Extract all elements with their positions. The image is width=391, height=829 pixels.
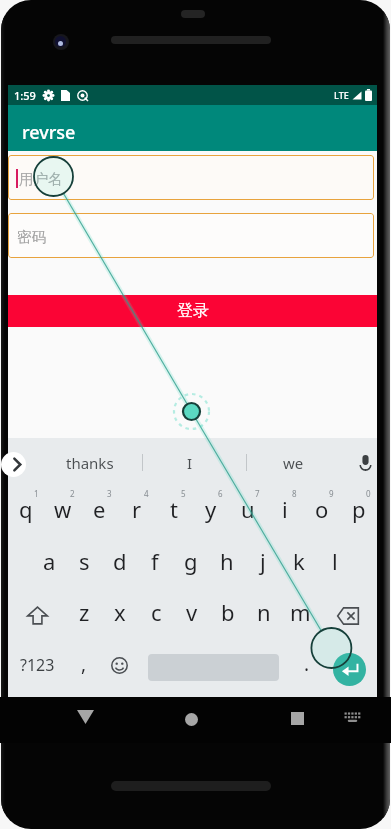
staticText: 2 xyxy=(70,488,75,499)
staticText: ?123 xyxy=(20,654,55,676)
button[interactable]: x xyxy=(102,590,138,641)
button[interactable]: , xyxy=(67,641,100,692)
button[interactable]: z xyxy=(67,590,102,641)
button[interactable]: Emoji xyxy=(100,641,138,692)
button[interactable]: . xyxy=(290,641,323,692)
button[interactable]: 4 xyxy=(118,487,155,539)
staticText: LTE xyxy=(334,89,349,101)
staticText: 4 xyxy=(144,488,149,499)
staticText: I xyxy=(187,453,193,473)
staticText: 0 xyxy=(366,488,371,499)
staticText: 3 xyxy=(107,488,112,499)
staticText: 密码 xyxy=(17,228,46,246)
button[interactable]: Backspace xyxy=(318,590,377,641)
staticText: 6 xyxy=(218,488,223,499)
staticText: 9 xyxy=(329,488,334,499)
staticText: r xyxy=(132,494,142,524)
button[interactable]: 8 xyxy=(266,487,303,539)
button[interactable]: g xyxy=(173,539,209,590)
button[interactable]: Enter xyxy=(323,641,377,692)
button[interactable]: 9 xyxy=(303,487,340,539)
staticText: w xyxy=(54,494,72,524)
button[interactable]: 密码 xyxy=(8,213,374,258)
button[interactable]: m xyxy=(282,590,318,641)
button[interactable]: s xyxy=(67,539,102,590)
staticText: f xyxy=(151,546,159,576)
staticText: 1 xyxy=(34,488,39,499)
staticText: i xyxy=(282,494,288,524)
button[interactable]: 用户名 xyxy=(8,155,374,200)
button[interactable]: a xyxy=(32,539,67,590)
staticText: g xyxy=(184,546,198,576)
button[interactable]: 7 xyxy=(229,487,266,539)
button[interactable]: 3 xyxy=(81,487,118,539)
button[interactable]: k xyxy=(281,539,317,590)
button[interactable]: f xyxy=(137,539,173,590)
button[interactable]: Home xyxy=(168,697,215,743)
staticText: 用户名 xyxy=(19,170,63,188)
staticText: o xyxy=(315,494,329,524)
staticText: c xyxy=(151,597,162,627)
button[interactable]: 登录 xyxy=(8,295,377,327)
staticText: e xyxy=(93,494,106,524)
staticText: 8 xyxy=(292,488,297,499)
staticText: a xyxy=(43,546,56,576)
button[interactable]: c xyxy=(138,590,174,641)
staticText: q xyxy=(19,494,33,524)
button[interactable]: 0 xyxy=(340,487,377,539)
button[interactable]: Space xyxy=(138,641,290,692)
button[interactable]: we xyxy=(247,438,339,487)
staticText: b xyxy=(221,597,235,627)
staticText: s xyxy=(79,546,90,576)
staticText: d xyxy=(113,546,127,576)
button[interactable]: b xyxy=(210,590,246,641)
button[interactable]: d xyxy=(102,539,137,590)
staticText: h xyxy=(220,546,234,576)
staticText: l xyxy=(332,546,338,576)
button[interactable]: Back xyxy=(62,697,109,743)
button[interactable]: 2 xyxy=(44,487,81,539)
staticText: we xyxy=(283,453,304,473)
staticText: v xyxy=(186,597,198,627)
staticText: j xyxy=(260,546,266,576)
staticText: y xyxy=(205,494,217,524)
button[interactable]: h xyxy=(209,539,245,590)
staticText: 登录 xyxy=(177,301,209,321)
staticText: x xyxy=(114,597,126,627)
staticText: p xyxy=(352,494,366,524)
button[interactable]: 6 xyxy=(192,487,229,539)
button[interactable]: Voice input xyxy=(351,438,380,487)
staticText: u xyxy=(241,494,255,524)
staticText: z xyxy=(79,597,90,627)
button[interactable]: n xyxy=(246,590,282,641)
staticText: thanks xyxy=(66,453,114,473)
button[interactable]: ?123 xyxy=(8,641,67,692)
button[interactable]: Switch keyboard xyxy=(336,697,369,743)
staticText: . xyxy=(304,651,310,677)
button[interactable]: v xyxy=(174,590,210,641)
staticText: 7 xyxy=(255,488,260,499)
button[interactable]: 1 xyxy=(8,487,44,539)
staticText: t xyxy=(170,494,178,524)
button[interactable]: l xyxy=(317,539,353,590)
staticText: n xyxy=(257,597,271,627)
button[interactable]: Recents xyxy=(274,697,321,743)
staticText: revrse xyxy=(22,120,76,145)
staticText: , xyxy=(81,651,87,677)
button[interactable]: j xyxy=(245,539,281,590)
staticText: 1:59 xyxy=(14,88,36,103)
staticText: m xyxy=(290,597,311,627)
button[interactable]: revrse xyxy=(8,105,377,151)
staticText: 5 xyxy=(181,488,186,499)
button[interactable]: I xyxy=(143,438,237,487)
button[interactable]: Shift xyxy=(8,590,67,641)
button[interactable]: thanks xyxy=(32,438,147,487)
button[interactable]: 5 xyxy=(155,487,192,539)
staticText: k xyxy=(293,546,305,576)
button[interactable]: More suggestions xyxy=(1,452,26,477)
